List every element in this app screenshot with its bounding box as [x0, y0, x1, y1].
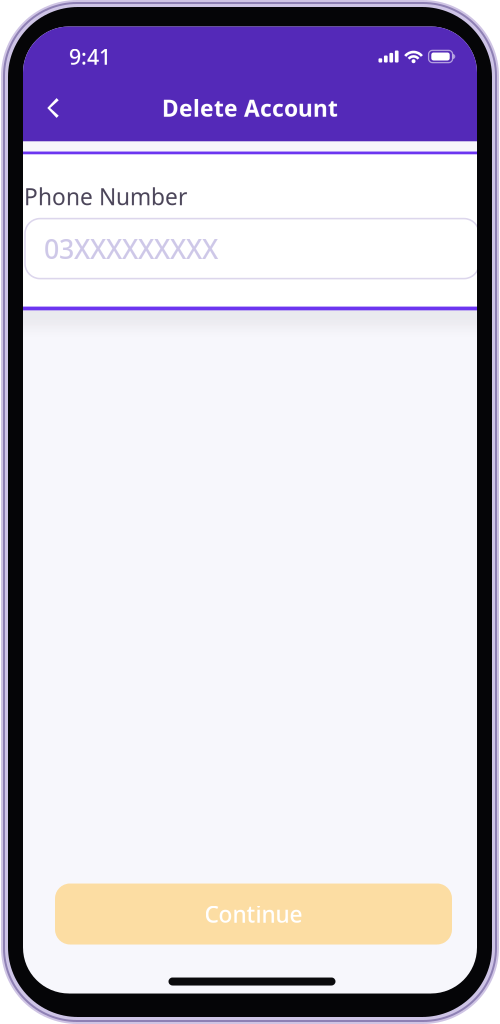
button[interactable]: Back — [31, 90, 75, 134]
staticText: 03XXXXXXXXX — [44, 231, 218, 266]
staticText: 9:41 — [69, 42, 111, 71]
staticText: Delete Account — [162, 93, 338, 123]
staticText: Continue — [204, 899, 302, 929]
staticText: Phone Number — [24, 181, 187, 212]
button[interactable]: Continue — [55, 883, 452, 944]
